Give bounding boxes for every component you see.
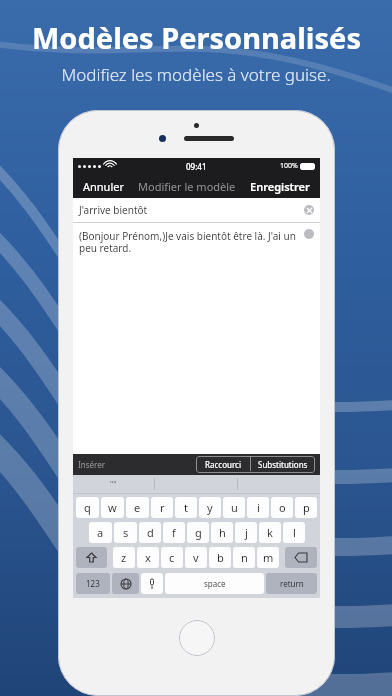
staticText: c: [169, 550, 175, 565]
staticText: w: [108, 500, 117, 515]
staticText: Raccourci: [205, 459, 241, 470]
button[interactable]: Raccourci: [196, 456, 250, 473]
staticText: d: [147, 525, 154, 540]
staticText: p: [303, 500, 310, 515]
button[interactable]: p: [295, 497, 317, 518]
button[interactable]: i: [247, 497, 269, 518]
staticText: J'arrive bientôt: [79, 203, 148, 217]
staticText: o: [279, 500, 286, 515]
button[interactable]: a: [89, 522, 112, 543]
button[interactable]: Insérer: [304, 229, 314, 239]
staticText: Enregistrer: [250, 179, 310, 194]
staticText: x: [145, 550, 151, 565]
button[interactable]: c: [161, 547, 183, 568]
button[interactable]: k: [259, 522, 281, 543]
staticText: k: [267, 525, 273, 540]
button[interactable]: q: [76, 497, 99, 518]
staticText: a: [97, 525, 104, 540]
button[interactable]: Enregistrer: [248, 177, 312, 196]
staticText: n: [241, 550, 248, 565]
staticText: l: [293, 525, 296, 540]
button[interactable]: s: [114, 522, 137, 543]
staticText: r: [160, 500, 165, 515]
button[interactable]: t: [175, 497, 197, 518]
button[interactable]: x: [137, 547, 159, 568]
staticText: Modifiez les modèles à votre guise.: [61, 63, 331, 86]
staticText: t: [184, 500, 188, 515]
staticText: e: [134, 500, 141, 515]
staticText: Insérer: [78, 459, 105, 470]
button[interactable]: h: [211, 522, 233, 543]
button[interactable]: o: [271, 497, 293, 518]
staticText: s: [123, 525, 129, 540]
button[interactable]: return: [266, 573, 317, 594]
staticText: Substitutions: [258, 459, 308, 470]
button[interactable]: Effacer: [304, 205, 314, 215]
button[interactable]: J'arrive bientôt: [79, 198, 314, 222]
staticText: g: [195, 525, 202, 540]
button[interactable]: g: [187, 522, 209, 543]
button[interactable]: Dictée: [141, 573, 163, 594]
button[interactable]: 123: [76, 573, 110, 594]
staticText: Modèles Personnalisés: [32, 18, 361, 57]
staticText: f: [172, 525, 176, 540]
staticText: Annuler: [83, 179, 125, 194]
staticText: b: [217, 550, 224, 565]
staticText: "": [110, 479, 117, 490]
button[interactable]: m: [257, 547, 279, 568]
staticText: 100%: [280, 161, 298, 171]
staticText: q: [84, 500, 91, 515]
staticText: v: [193, 550, 199, 565]
staticText: y: [207, 500, 213, 515]
staticText: return: [280, 578, 304, 589]
button[interactable]: w: [101, 497, 124, 518]
staticText: m: [263, 550, 274, 565]
button[interactable]: r: [151, 497, 173, 518]
button[interactable]: Supprimer: [285, 547, 317, 568]
staticText: 123: [86, 578, 100, 589]
button[interactable]: Majuscule: [76, 547, 107, 568]
button[interactable]: space: [165, 573, 264, 594]
staticText: u: [231, 500, 238, 515]
staticText: i: [257, 500, 260, 515]
button[interactable]: b: [209, 547, 231, 568]
staticText: Modifier le modèle: [138, 179, 236, 194]
button[interactable]: f: [163, 522, 185, 543]
staticText: (Bonjour Prénom,)Je vais bientôt être là…: [79, 229, 301, 255]
button[interactable]: Changer de clavier: [112, 573, 139, 594]
button[interactable]: u: [223, 497, 245, 518]
staticText: space: [204, 578, 226, 589]
button[interactable]: "": [73, 475, 154, 493]
button[interactable]: z: [113, 547, 135, 568]
button[interactable]: Annuler: [81, 177, 127, 196]
staticText: j: [245, 525, 248, 540]
button[interactable]: d: [139, 522, 161, 543]
staticText: h: [219, 525, 226, 540]
button[interactable]: j: [235, 522, 257, 543]
button[interactable]: Substitutions: [251, 456, 315, 473]
button[interactable]: y: [199, 497, 221, 518]
button[interactable]: l: [283, 522, 305, 543]
button[interactable]: n: [233, 547, 255, 568]
button[interactable]: e: [126, 497, 149, 518]
staticText: 09:41: [186, 161, 207, 172]
button[interactable]: v: [185, 547, 207, 568]
staticText: z: [121, 550, 127, 565]
